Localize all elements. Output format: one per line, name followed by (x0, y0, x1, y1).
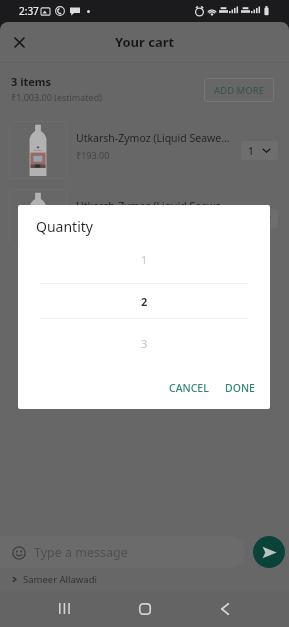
button[interactable]: 1 (241, 209, 278, 228)
staticText: 1 (248, 144, 254, 158)
button[interactable]: Sameer Allawadi (0, 573, 289, 590)
button[interactable]: Utkarsh-Zymoz (Liquid Seawe… (9, 185, 278, 251)
staticText: Type a message (34, 544, 128, 561)
staticText: ₹1,003.00 (estimated) (11, 91, 102, 103)
staticText: 3 (141, 336, 148, 351)
button[interactable]: Type a message (0, 536, 245, 568)
button[interactable]: Utkarsh-Zymoz (Liquid Seawe… (9, 115, 278, 185)
staticText: DONE (225, 381, 255, 395)
button[interactable]: Back (205, 590, 245, 627)
staticText: 2 (141, 294, 148, 309)
button[interactable]: Recent apps (44, 590, 84, 627)
staticText: ₹193.00 (76, 149, 110, 161)
button[interactable]: Close (5, 28, 33, 56)
button[interactable]: DONE (219, 376, 261, 400)
staticText: CANCEL (169, 381, 209, 395)
button[interactable]: 1 (241, 141, 278, 160)
staticText: 2:37 (19, 4, 39, 18)
staticText: 3 items (11, 74, 52, 89)
staticText: 1 (141, 252, 148, 267)
staticText: Utkarsh-Zymoz (Liquid Seawe… (76, 199, 230, 213)
button[interactable]: ADD MORE (204, 78, 274, 102)
staticText: Sameer Allawadi (23, 573, 97, 586)
staticText: Utkarsh-Zymoz (Liquid Seawe… (76, 131, 230, 145)
button[interactable]: Send (253, 536, 285, 568)
staticText: Quantity (36, 217, 93, 236)
button[interactable]: Home (125, 590, 165, 627)
staticText: ADD MORE (214, 84, 265, 97)
staticText: ₹193.00 (76, 217, 110, 229)
staticText: Your cart (115, 33, 175, 51)
button[interactable]: CANCEL (163, 376, 215, 400)
